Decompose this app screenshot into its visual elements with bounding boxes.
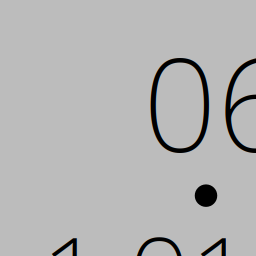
staticText: 06: [143, 16, 256, 188]
staticText: 1:01: [41, 201, 252, 256]
